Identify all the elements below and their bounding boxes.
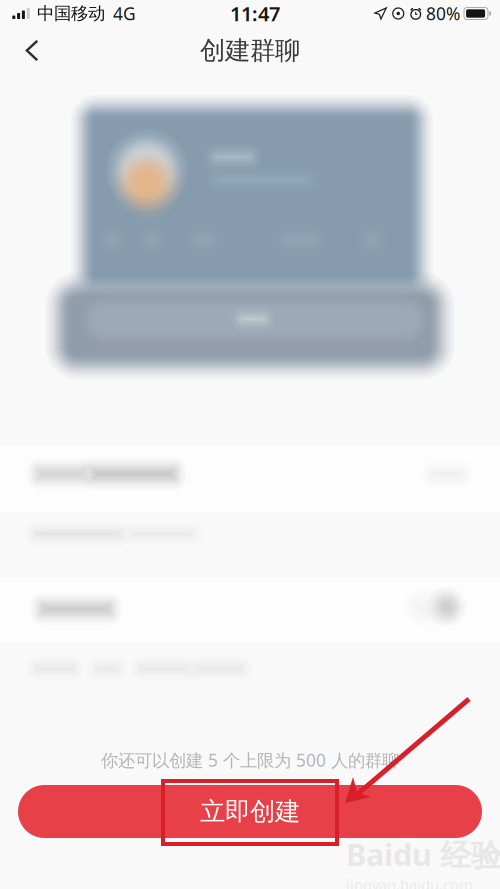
- staticText: 中国移动: [37, 3, 105, 24]
- button[interactable]: 返回: [8, 27, 56, 73]
- staticText: 80%: [426, 2, 460, 25]
- staticText: 创建群聊: [200, 35, 300, 66]
- button[interactable]: [0, 445, 500, 512]
- staticText: 4G: [113, 2, 136, 25]
- staticText: jingyan.baidu.com: [346, 875, 473, 889]
- staticText: 11:47: [230, 0, 280, 27]
- staticText: Baidu 经验: [346, 834, 500, 875]
- button[interactable]: 立即创建: [18, 785, 482, 838]
- staticText: 你还可以创建 5 个上限为 500 人的群聊: [101, 748, 399, 771]
- staticText: 立即创建: [200, 796, 300, 827]
- button[interactable]: [0, 578, 500, 643]
